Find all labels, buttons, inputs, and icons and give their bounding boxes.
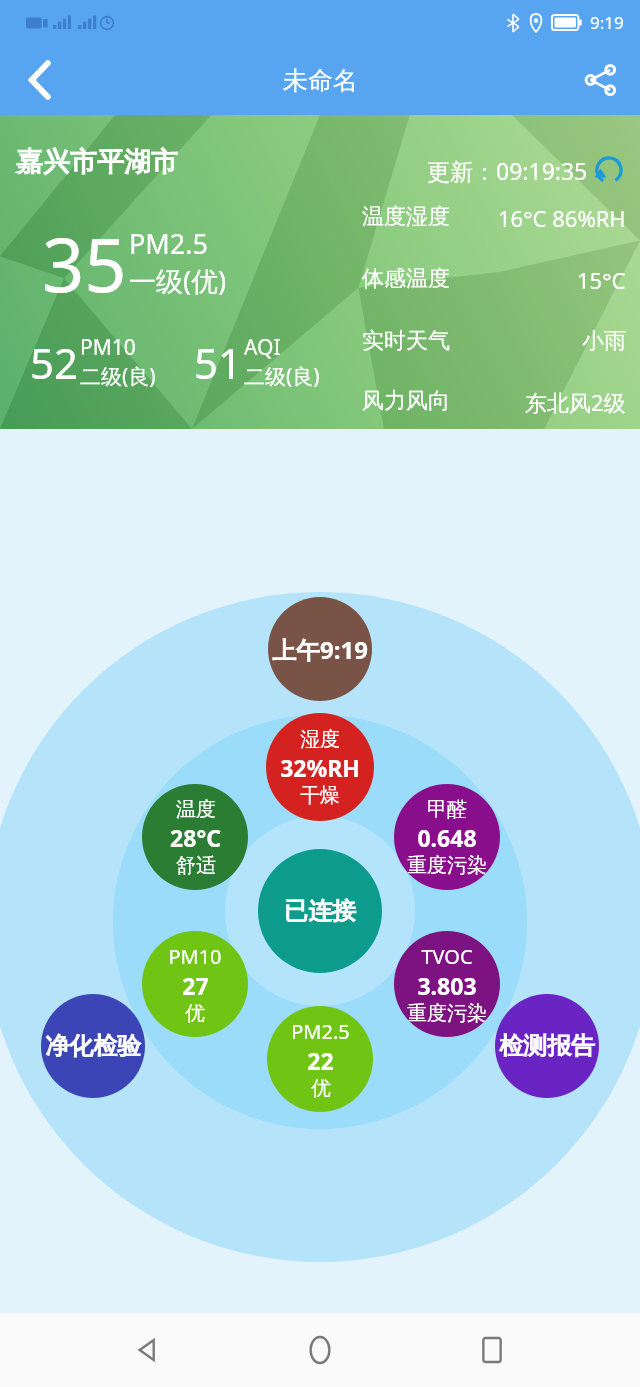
button[interactable]: Time	[268, 597, 372, 701]
staticText: PM2.5	[129, 225, 208, 262]
staticText: 9:19	[590, 11, 624, 34]
staticText: 甲醛	[427, 797, 467, 822]
staticText: 已连接	[284, 896, 356, 926]
button[interactable]: TVOC	[394, 931, 500, 1037]
staticText: 优	[311, 1076, 331, 1101]
staticText: 27	[182, 970, 209, 1001]
staticText: 上午9:19	[272, 633, 368, 666]
button[interactable]: Humidity	[266, 713, 374, 821]
staticText: PM10	[80, 333, 136, 362]
button[interactable]: Temperature	[142, 784, 248, 890]
staticText: 22	[307, 1045, 334, 1076]
staticText: 一级(优)	[129, 262, 227, 299]
staticText: 二级(良)	[244, 362, 320, 391]
staticText: 温度湿度	[362, 203, 450, 231]
staticText: 东北风2级	[525, 387, 626, 417]
button[interactable]: Back	[120, 1322, 176, 1378]
staticText: PM2.5	[291, 1018, 350, 1045]
staticText: 51	[194, 334, 243, 391]
staticText: 小雨	[582, 327, 626, 355]
staticText: 二级(良)	[80, 362, 156, 391]
staticText: 体感温度	[362, 265, 450, 293]
button[interactable]: Recents	[464, 1322, 520, 1378]
staticText: AQI	[244, 333, 281, 362]
staticText: 3.803	[417, 970, 477, 1001]
button[interactable]: PM10	[142, 931, 248, 1037]
staticText: 16°C 86%RH	[498, 203, 626, 233]
button[interactable]: Detection report	[495, 994, 599, 1098]
button[interactable]: Formaldehyde	[394, 784, 500, 890]
staticText: 0.648	[417, 822, 477, 853]
staticText: 温度	[176, 797, 216, 822]
staticText: 风力风向	[362, 387, 450, 415]
staticText: PM10	[168, 943, 222, 970]
staticText: 未命名	[283, 65, 358, 96]
button[interactable]: Purification test	[41, 994, 145, 1098]
button[interactable]: Share	[560, 45, 640, 115]
staticText: 重度污染	[407, 853, 487, 878]
staticText: 更新：09:19:35	[427, 155, 588, 186]
staticText: 15°C	[577, 265, 626, 295]
button[interactable]: Home	[292, 1322, 348, 1378]
staticText: 检测报告	[499, 1031, 595, 1061]
staticText: 湿度	[300, 727, 340, 752]
staticText: 嘉兴市平湖市	[16, 145, 178, 179]
button[interactable]: Connected	[258, 849, 382, 973]
staticText: 优	[185, 1001, 205, 1026]
button[interactable]: PM2.5	[267, 1006, 373, 1112]
staticText: 干燥	[300, 783, 340, 808]
staticText: 舒适	[176, 853, 216, 878]
staticText: 52	[30, 334, 79, 391]
staticText: 净化检验	[45, 1031, 141, 1061]
staticText: 实时天气	[362, 327, 450, 355]
staticText: 重度污染	[407, 1001, 487, 1026]
staticText: 32%RH	[280, 752, 360, 783]
button[interactable]: Back	[0, 45, 80, 115]
staticText: TVOC	[421, 943, 473, 970]
staticText: 28°C	[170, 822, 221, 853]
staticText: 35	[42, 213, 127, 314]
button[interactable]: Refresh	[590, 151, 628, 189]
